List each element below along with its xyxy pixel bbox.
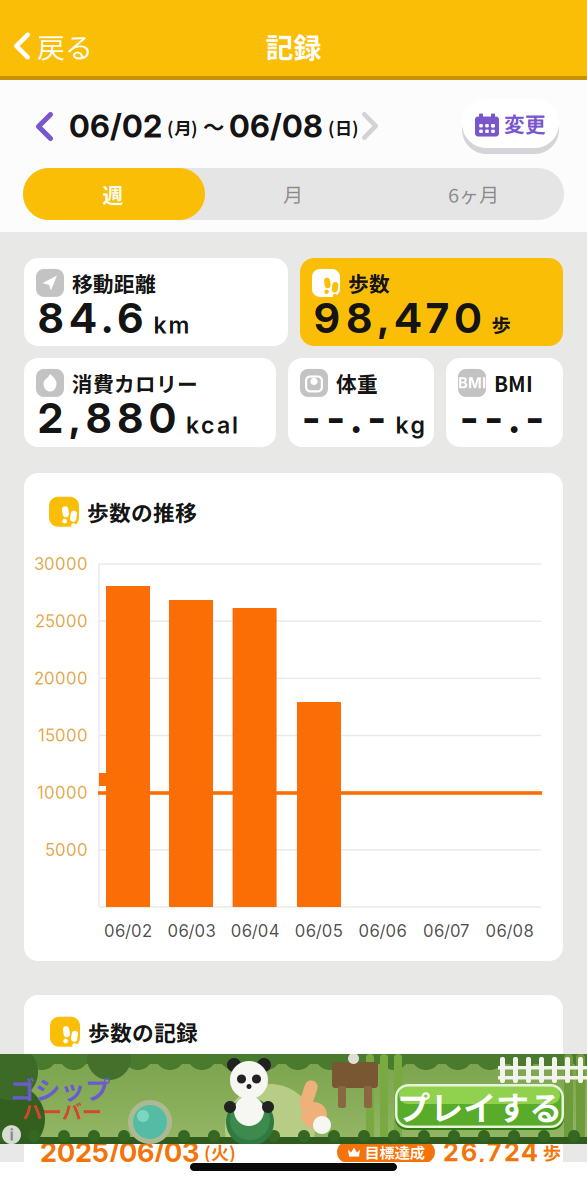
staticText: 6ヶ月 bbox=[448, 179, 499, 208]
staticText: kcal bbox=[186, 411, 238, 439]
button[interactable]: 移動距離 bbox=[24, 258, 288, 346]
staticText: 歩 bbox=[543, 1139, 561, 1165]
button[interactable] bbox=[356, 108, 384, 144]
staticText: 06/08 bbox=[229, 107, 323, 145]
staticText: ゴシップ bbox=[10, 1070, 110, 1107]
staticText: 月 bbox=[283, 179, 303, 208]
staticText: --.- bbox=[460, 393, 543, 443]
button[interactable]: 体重 bbox=[288, 358, 434, 447]
staticText: 84.6 bbox=[38, 293, 143, 343]
staticText: 06/04 bbox=[231, 921, 280, 941]
staticText: 20000 bbox=[34, 668, 88, 688]
button[interactable]: BMI bbox=[446, 358, 563, 447]
button[interactable]: 歩数 bbox=[300, 258, 563, 346]
button[interactable]: ゴシップ bbox=[0, 1054, 587, 1144]
staticText: km bbox=[153, 311, 189, 339]
staticText: 98,470 bbox=[314, 293, 481, 343]
staticText: 体重 bbox=[336, 368, 378, 398]
staticText: 15000 bbox=[38, 725, 88, 746]
staticText: 5000 bbox=[45, 840, 88, 860]
staticText: --.- bbox=[302, 393, 385, 443]
staticText: 目標達成 bbox=[364, 1141, 424, 1163]
staticText: 2,880 bbox=[38, 393, 176, 443]
staticText: (月) bbox=[167, 115, 198, 140]
staticText: 10000 bbox=[37, 783, 88, 803]
staticText: 移動距離 bbox=[72, 268, 156, 298]
button[interactable]: 週 bbox=[23, 168, 203, 220]
staticText: 歩数の推移 bbox=[87, 496, 197, 527]
staticText: 25000 bbox=[35, 611, 88, 631]
staticText: (日) bbox=[328, 115, 359, 140]
staticText: 歩数の記録 bbox=[88, 1016, 198, 1047]
staticText: 〜 bbox=[203, 111, 224, 141]
button[interactable] bbox=[30, 108, 59, 145]
staticText: 歩数 bbox=[348, 268, 390, 298]
staticText: 30000 bbox=[34, 554, 88, 574]
staticText: 06/08 bbox=[486, 921, 534, 941]
staticText: ハーバー bbox=[22, 1096, 102, 1125]
staticText: 06/07 bbox=[423, 921, 469, 941]
staticText: 歩 bbox=[491, 310, 510, 338]
staticText: 26,724 bbox=[443, 1137, 538, 1167]
button[interactable]: 月 bbox=[203, 168, 383, 220]
staticText: 消費カロリー bbox=[72, 368, 198, 398]
staticText: i bbox=[9, 1125, 13, 1144]
staticText: プレイする bbox=[397, 1082, 562, 1130]
staticText: 06/03 bbox=[168, 921, 216, 941]
staticText: BMI bbox=[458, 374, 486, 392]
button[interactable]: 戻る bbox=[14, 26, 93, 66]
staticText: 戻る bbox=[37, 26, 93, 66]
staticText: 2025/06/03 bbox=[40, 1135, 199, 1169]
staticText: 06/02 bbox=[104, 921, 152, 941]
button[interactable]: 消費カロリー bbox=[24, 358, 276, 447]
staticText: (火) bbox=[204, 1139, 236, 1165]
staticText: 06/05 bbox=[295, 921, 343, 941]
staticText: kg bbox=[395, 411, 424, 439]
button[interactable]: 変更 bbox=[462, 96, 559, 151]
staticText: 変更 bbox=[504, 108, 546, 138]
staticText: 記録 bbox=[265, 26, 321, 66]
staticText: 週 bbox=[102, 179, 123, 209]
staticText: 06/02 bbox=[69, 107, 162, 145]
staticText: 06/06 bbox=[358, 921, 406, 941]
staticText: BMI bbox=[494, 368, 533, 398]
button[interactable]: 2025/06/03 bbox=[24, 995, 563, 1200]
button[interactable]: 6ヶ月 bbox=[383, 168, 564, 220]
